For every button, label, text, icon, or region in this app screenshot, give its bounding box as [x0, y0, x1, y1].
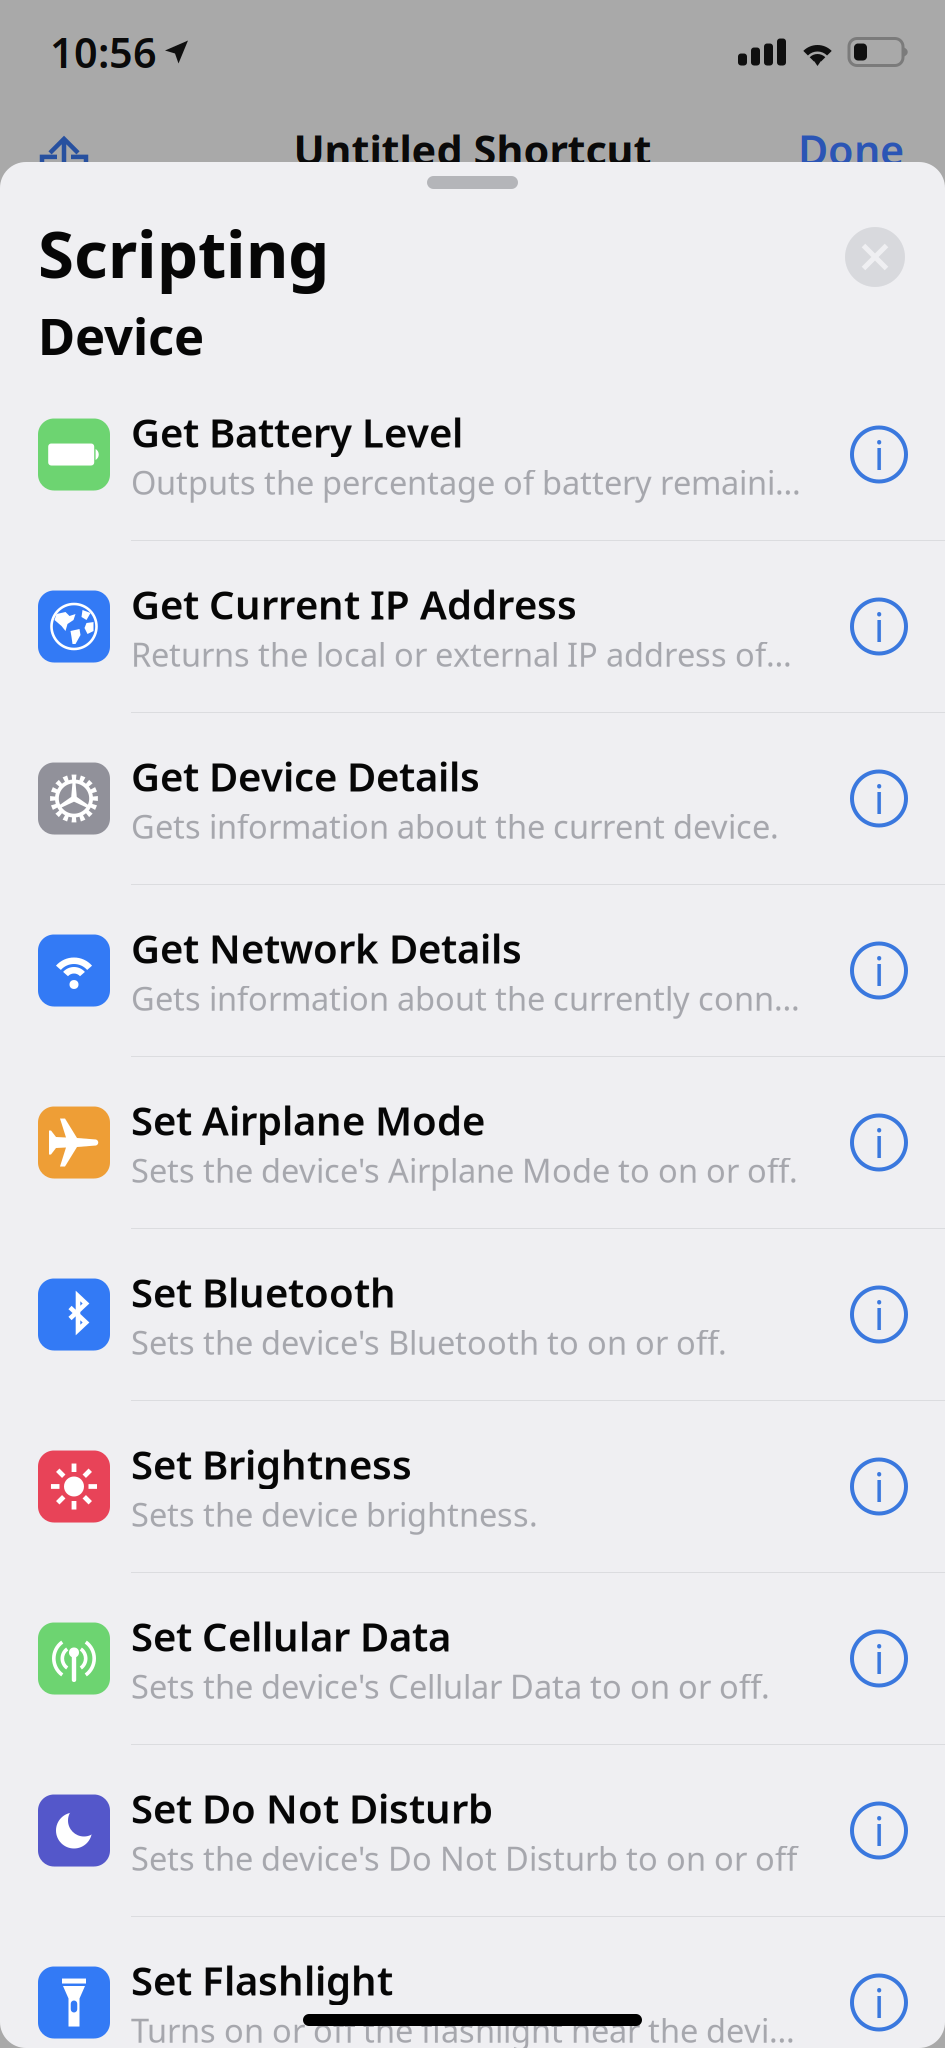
button[interactable]: About Get Battery Level: [852, 427, 906, 481]
button[interactable]: Set Bluetooth: [0, 1229, 945, 1400]
staticText: Sets the device's Bluetooth to on or off…: [131, 1320, 727, 1364]
staticText: i: [874, 600, 884, 653]
button[interactable]: Get Device Details: [0, 713, 945, 884]
button[interactable]: Set Cellular Data: [0, 1573, 945, 1744]
staticText: i: [874, 1460, 884, 1513]
staticText: Set Airplane Mode: [131, 1093, 485, 1146]
staticText: Sets the device's Do Not Disturb to on o…: [131, 1836, 797, 1880]
staticText: Device: [38, 302, 204, 369]
staticText: Get Current IP Address: [131, 577, 577, 630]
staticText: 10:56: [50, 25, 157, 79]
staticText: Gets information about the current devic…: [131, 804, 779, 848]
staticText: Outputs the percentage of battery remain…: [131, 460, 801, 504]
button[interactable]: About Set Flashlight: [852, 1975, 906, 2029]
staticText: Get Battery Level: [131, 405, 463, 458]
staticText: Get Network Details: [131, 921, 522, 974]
staticText: Set Bluetooth: [131, 1265, 396, 1318]
staticText: Set Do Not Disturb: [131, 1781, 493, 1834]
staticText: i: [874, 1632, 884, 1685]
staticText: Done: [798, 122, 904, 177]
button[interactable]: About Set Brightness: [852, 1459, 906, 1513]
staticText: i: [874, 772, 884, 825]
button[interactable]: About Set Airplane Mode: [852, 1115, 906, 1169]
staticText: Scripting: [38, 209, 329, 296]
button[interactable]: Get Network Details: [0, 885, 945, 1056]
staticText: Set Cellular Data: [131, 1609, 451, 1662]
staticText: Sets the device brightness.: [131, 1492, 538, 1536]
staticText: Set Brightness: [131, 1437, 412, 1490]
button[interactable]: About Get Current IP Address: [852, 599, 906, 653]
button[interactable]: Done: [798, 122, 904, 177]
staticText: Gets information about the currently con…: [131, 976, 800, 1020]
staticText: i: [874, 428, 884, 481]
staticText: Set Flashlight: [131, 1953, 393, 2006]
button[interactable]: Set Flashlight: [0, 1917, 945, 2048]
staticText: Turns on or off the flashlight near the …: [131, 2008, 795, 2048]
staticText: Untitled Shortcut: [293, 122, 651, 177]
staticText: Sets the device's Airplane Mode to on or…: [131, 1148, 798, 1192]
staticText: Returns the local or external IP address…: [131, 632, 792, 676]
staticText: i: [874, 1976, 884, 2029]
staticText: i: [874, 1116, 884, 1169]
button[interactable]: Set Brightness: [0, 1401, 945, 1572]
staticText: Get Device Details: [131, 749, 480, 802]
button[interactable]: About Set Do Not Disturb: [852, 1803, 906, 1857]
button[interactable]: Get Battery Level: [0, 369, 945, 540]
button[interactable]: Share: [40, 136, 88, 177]
button[interactable]: About Get Network Details: [852, 943, 906, 997]
button[interactable]: Get Current IP Address: [0, 541, 945, 712]
button[interactable]: Close: [845, 227, 905, 287]
button[interactable]: About Set Bluetooth: [852, 1287, 906, 1341]
staticText: Sets the device's Cellular Data to on or…: [131, 1664, 770, 1708]
button[interactable]: About Get Device Details: [852, 771, 906, 825]
button[interactable]: About Set Cellular Data: [852, 1631, 906, 1685]
staticText: i: [874, 1804, 884, 1857]
staticText: i: [874, 944, 884, 997]
staticText: i: [874, 1288, 884, 1341]
button[interactable]: Set Do Not Disturb: [0, 1745, 945, 1916]
button[interactable]: Set Airplane Mode: [0, 1057, 945, 1228]
